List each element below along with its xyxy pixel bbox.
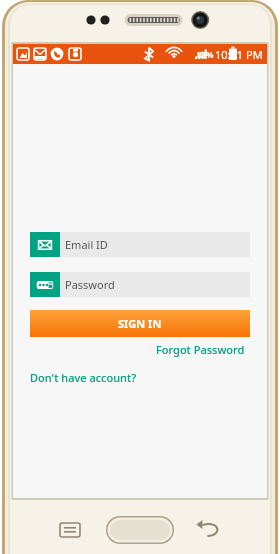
button[interactable]: Password <box>30 272 250 297</box>
staticText: Forgot Password <box>156 342 245 357</box>
staticText: 10:51 PM <box>215 47 263 62</box>
button[interactable]: SIGN IN <box>30 310 250 337</box>
staticText: Password <box>65 277 115 292</box>
other: Password <box>30 272 60 297</box>
staticText: Don't have account? <box>30 370 137 385</box>
staticText: 83% <box>197 49 214 60</box>
staticText: SIGN IN <box>118 316 162 331</box>
staticText: Email ID <box>65 237 108 252</box>
button[interactable]: Email <box>30 232 250 257</box>
button[interactable]: Don't have account? <box>30 370 267 385</box>
other: Email <box>30 232 60 257</box>
button[interactable]: Forgot Password <box>13 342 245 357</box>
